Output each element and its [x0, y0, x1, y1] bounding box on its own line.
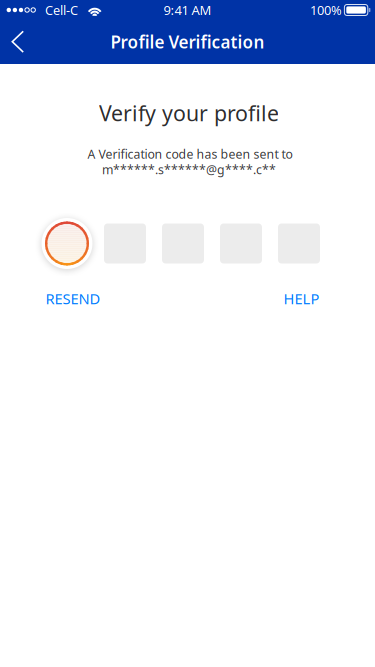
staticText: A Verification code has been sent to: [87, 146, 292, 162]
button[interactable]: Code digit 1: [41, 217, 93, 269]
staticText: HELP: [283, 288, 319, 308]
button[interactable]: HELP: [283, 288, 319, 308]
button[interactable]: RESEND: [45, 288, 100, 308]
staticText: RESEND: [45, 288, 100, 308]
staticText: Verify your profile: [99, 98, 279, 128]
staticText: 100%: [310, 1, 342, 19]
staticText: 9:41 AM: [163, 1, 211, 19]
staticText: Profile Verification: [110, 30, 264, 54]
button[interactable]: Back: [0, 20, 38, 64]
staticText: m******.s******@g****.c**: [102, 161, 276, 178]
staticText: Cell-C: [45, 1, 78, 19]
